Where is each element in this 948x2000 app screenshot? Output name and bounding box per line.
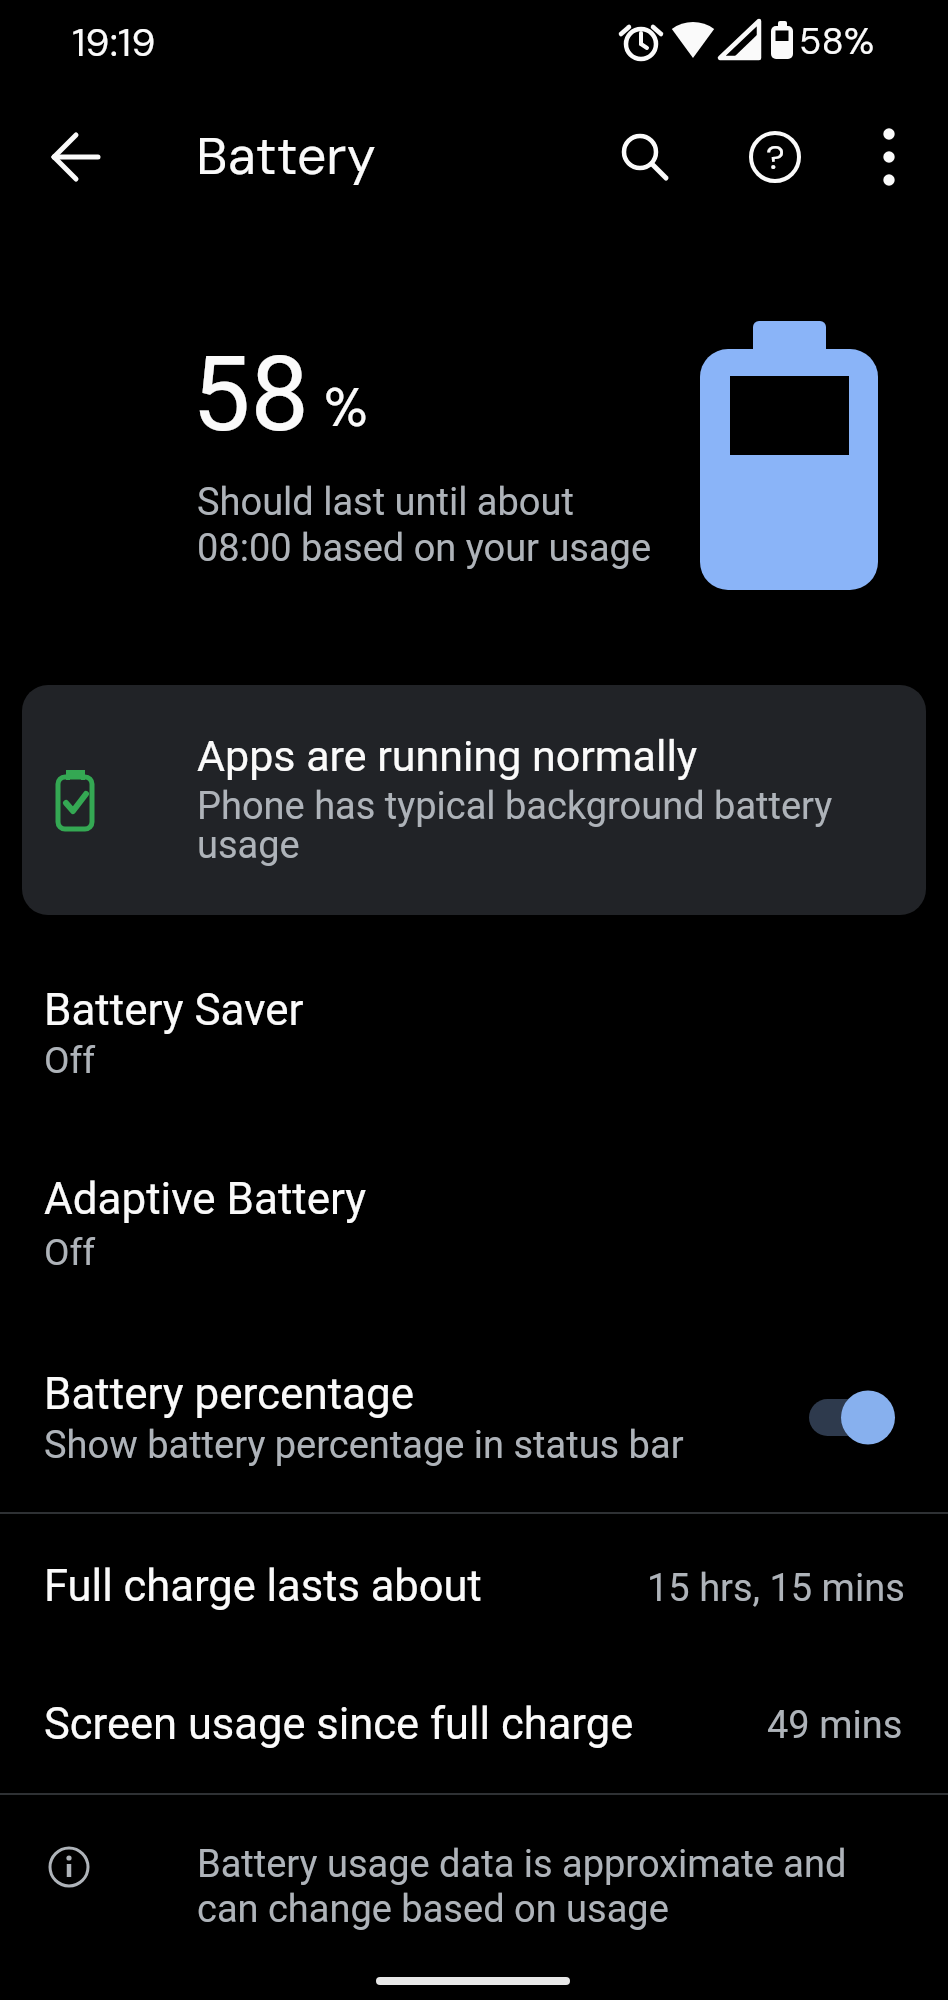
staticText: Off bbox=[44, 1231, 96, 1274]
staticText: Should last until about bbox=[197, 480, 574, 525]
staticText: Battery bbox=[196, 122, 376, 190]
staticText: 49 mins bbox=[767, 1703, 903, 1748]
staticText: Adaptive Battery bbox=[44, 1173, 367, 1225]
staticText: 58% bbox=[799, 17, 875, 65]
staticText: Apps are running normally bbox=[197, 731, 698, 781]
staticText: Off bbox=[44, 1039, 96, 1082]
staticText: usage bbox=[197, 823, 300, 868]
button[interactable] bbox=[40, 120, 110, 194]
button[interactable] bbox=[610, 122, 672, 188]
staticText: Full charge lasts about bbox=[44, 1561, 482, 1612]
staticText: % bbox=[324, 373, 368, 442]
button[interactable] bbox=[0, 1145, 948, 1335]
staticText: Phone has typical background battery bbox=[197, 784, 833, 829]
staticText: can change based on usage bbox=[197, 1887, 669, 1932]
button[interactable] bbox=[0, 955, 948, 1145]
staticText: Show battery percentage in status bar bbox=[44, 1423, 684, 1468]
button[interactable] bbox=[0, 1654, 948, 1793]
staticText: ? bbox=[766, 135, 785, 179]
button[interactable] bbox=[0, 1335, 948, 1512]
button[interactable] bbox=[22, 685, 926, 915]
staticText: Screen usage since full charge bbox=[44, 1699, 634, 1750]
staticText: Battery usage data is approximate and bbox=[197, 1842, 847, 1887]
button[interactable] bbox=[745, 127, 805, 187]
staticText: Battery percentage bbox=[44, 1368, 415, 1420]
button[interactable] bbox=[0, 1514, 948, 1654]
staticText: 19:19 bbox=[72, 17, 156, 68]
button[interactable] bbox=[865, 122, 915, 192]
staticText: Battery Saver bbox=[44, 984, 304, 1036]
staticText: 58 bbox=[192, 334, 309, 456]
staticText: 15 hrs, 15 mins bbox=[647, 1566, 905, 1611]
staticText: 08:00 based on your usage bbox=[197, 526, 652, 571]
